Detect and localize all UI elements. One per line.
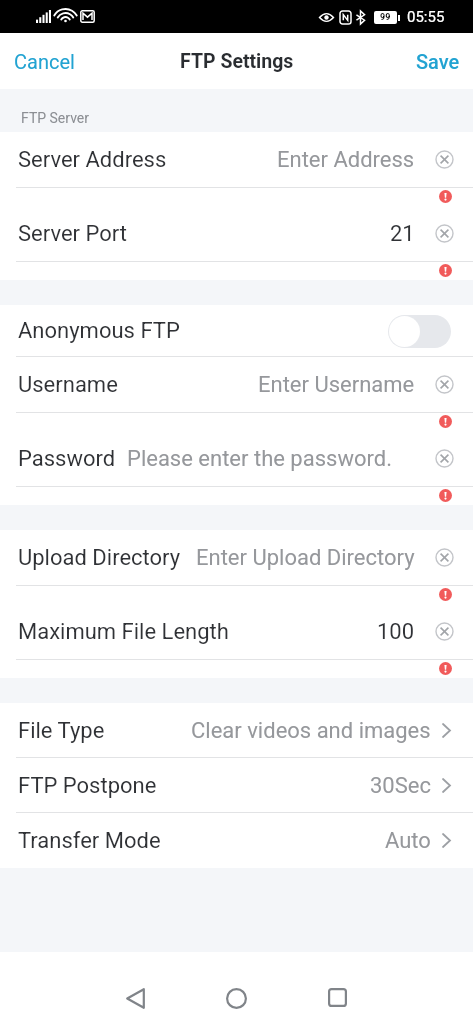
staticText: Username	[18, 372, 118, 398]
staticText: Enter Address	[277, 147, 415, 173]
button[interactable]: Back	[85, 988, 186, 1024]
staticText: Server Address	[18, 147, 167, 173]
button[interactable]: Save	[402, 33, 473, 89]
staticText: Clear videos and images	[191, 718, 431, 744]
button[interactable]: Server Address	[0, 132, 473, 187]
staticText: FTP Settings	[180, 50, 294, 73]
staticText: Password	[18, 446, 116, 472]
staticText: 21	[390, 221, 415, 247]
button[interactable]: Maximum File Length	[0, 604, 473, 659]
button[interactable]: FTP Postpone	[0, 758, 473, 813]
other: Clear text	[435, 224, 454, 243]
staticText: Auto	[385, 828, 431, 854]
staticText: 30Sec	[370, 773, 431, 799]
staticText: Enter Username	[258, 372, 415, 398]
other: Clear text	[435, 375, 454, 394]
other: Clear text	[435, 622, 454, 641]
staticText: Transfer Mode	[18, 828, 161, 854]
other: Clear text	[435, 449, 454, 468]
staticText: Enter Upload Directory	[196, 545, 415, 571]
staticText: File Type	[18, 718, 105, 744]
staticText: Upload Directory	[18, 545, 181, 571]
staticText: FTP Postpone	[18, 773, 157, 799]
staticText: Server Port	[18, 221, 127, 247]
staticText: Maximum File Length	[18, 619, 229, 645]
staticText: Save	[416, 50, 460, 73]
button[interactable]: Home	[186, 988, 287, 1024]
staticText: 99	[380, 12, 391, 23]
button[interactable]: Cancel	[0, 33, 90, 89]
staticText: Anonymous FTP	[18, 318, 180, 344]
button[interactable]: Server Port	[0, 206, 473, 261]
staticText: Please enter the password.	[127, 446, 392, 472]
staticText: FTP Server	[21, 110, 89, 126]
button[interactable]: Upload Directory	[0, 530, 473, 585]
staticText: Cancel	[14, 50, 75, 73]
staticText: 100	[377, 619, 415, 645]
staticText: 05:55	[407, 8, 445, 26]
other: Clear text	[435, 150, 454, 169]
button[interactable]: Anonymous FTP	[0, 305, 473, 357]
other: Clear text	[435, 548, 454, 567]
button[interactable]: Transfer Mode	[0, 813, 473, 868]
button[interactable]: Username	[0, 357, 473, 412]
button[interactable]: Recent apps	[287, 988, 388, 1024]
button[interactable]: File Type	[0, 703, 473, 758]
button[interactable]: Password	[0, 431, 473, 486]
